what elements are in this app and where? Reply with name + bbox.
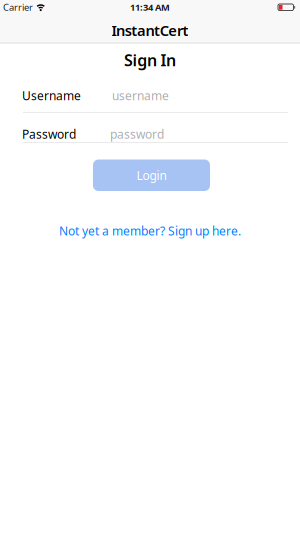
staticText: InstantCert — [111, 20, 188, 40]
staticText: password — [110, 126, 164, 142]
staticText: Login — [136, 167, 166, 183]
staticText: Not yet a member? Sign up here. — [59, 223, 241, 239]
staticText: Carrier — [3, 1, 33, 13]
staticText: Password — [22, 126, 76, 142]
button[interactable]: Login — [93, 159, 210, 191]
staticText: Username — [22, 87, 81, 103]
staticText: 11:34 AM — [130, 1, 170, 13]
button[interactable]: Password — [22, 121, 288, 147]
button[interactable]: Not yet a member? Sign up here. — [59, 223, 241, 239]
button[interactable]: Username — [22, 82, 288, 108]
staticText: Sign In — [124, 49, 176, 71]
staticText: username — [112, 87, 169, 103]
